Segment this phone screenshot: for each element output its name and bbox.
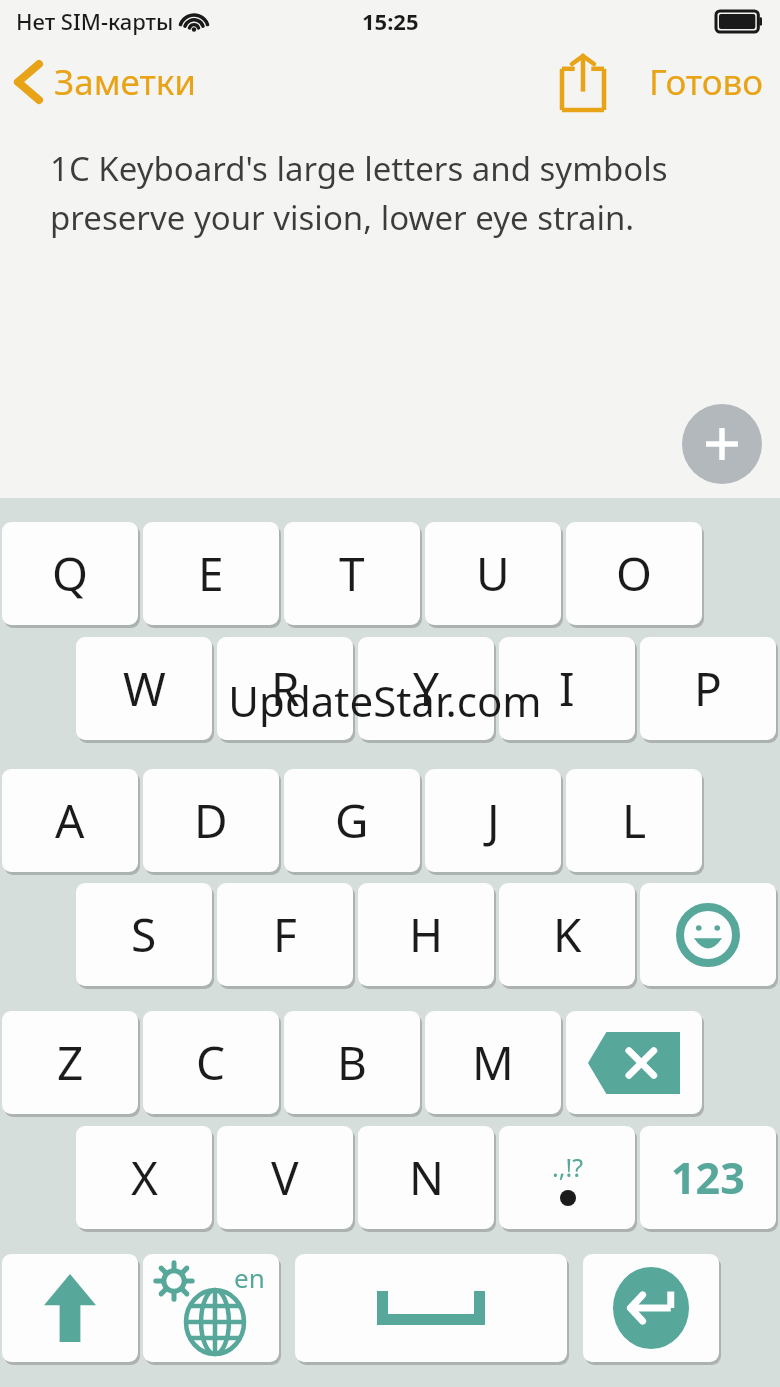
button[interactable]: R	[217, 637, 353, 740]
button[interactable]: L	[566, 769, 702, 872]
button[interactable]: N	[358, 1126, 494, 1229]
staticText: O	[616, 542, 652, 605]
staticText: M	[472, 1031, 514, 1094]
button[interactable]: C	[143, 1011, 279, 1114]
staticText: Z	[57, 1031, 84, 1094]
staticText: I	[559, 657, 575, 720]
button[interactable]: Q	[2, 522, 138, 625]
button[interactable]: Punctuation	[499, 1126, 635, 1229]
button[interactable]: J	[425, 769, 561, 872]
button[interactable]: E	[143, 522, 279, 625]
staticText: UpdateStar.com	[228, 672, 542, 729]
staticText: U	[476, 542, 510, 605]
button[interactable]: Add	[682, 404, 762, 484]
button[interactable]: X	[76, 1126, 212, 1229]
staticText: H	[409, 903, 444, 966]
button[interactable]: B	[284, 1011, 420, 1114]
button[interactable]: M	[425, 1011, 561, 1114]
staticText: 1C Keyboard's large letters and symbols …	[50, 146, 730, 240]
button[interactable]: G	[284, 769, 420, 872]
button[interactable]: S	[76, 883, 212, 986]
staticText: L	[622, 789, 647, 852]
staticText: R	[271, 657, 300, 720]
staticText: en	[234, 1260, 265, 1295]
button[interactable]: O	[566, 522, 702, 625]
staticText: P	[694, 657, 722, 720]
staticText: X	[131, 1146, 158, 1209]
staticText: W	[123, 657, 166, 720]
button[interactable]: Space	[295, 1254, 567, 1362]
button[interactable]: A	[2, 769, 138, 872]
staticText: N	[409, 1146, 444, 1209]
button[interactable]: Z	[2, 1011, 138, 1114]
button[interactable]: Backspace	[566, 1011, 702, 1114]
staticText: T	[339, 542, 365, 605]
button[interactable]: Заметки	[14, 58, 197, 106]
staticText: D	[194, 789, 228, 852]
staticText: S	[131, 903, 157, 966]
button[interactable]: U	[425, 522, 561, 625]
staticText: Y	[413, 657, 440, 720]
button[interactable]: Emoji	[640, 883, 776, 986]
staticText: 15:25	[362, 6, 419, 36]
button[interactable]: T	[284, 522, 420, 625]
button[interactable]: D	[143, 769, 279, 872]
staticText: Нет SIM-карты	[16, 6, 174, 36]
button[interactable]: I	[499, 637, 635, 740]
button[interactable]: K	[499, 883, 635, 986]
button[interactable]: W	[76, 637, 212, 740]
staticText: V	[271, 1146, 299, 1209]
button[interactable]: V	[217, 1126, 353, 1229]
button[interactable]: F	[217, 883, 353, 986]
button[interactable]: Numbers	[640, 1126, 776, 1229]
button[interactable]: Готово	[649, 58, 764, 106]
button[interactable]: Y	[358, 637, 494, 740]
staticText: B	[337, 1031, 367, 1094]
staticText: K	[553, 903, 582, 966]
staticText: F	[273, 903, 297, 966]
staticText: G	[335, 789, 369, 852]
button[interactable]: Switch language and settings	[143, 1254, 279, 1362]
button[interactable]: Share	[548, 46, 618, 118]
staticText: A	[55, 789, 85, 852]
staticText: E	[198, 542, 224, 605]
staticText: J	[487, 789, 500, 852]
button[interactable]: Enter	[583, 1254, 719, 1362]
staticText: 123	[671, 1148, 745, 1207]
staticText: Готово	[649, 58, 764, 106]
staticText: Q	[52, 542, 88, 605]
staticText: .,!?	[552, 1150, 583, 1184]
staticText: C	[196, 1031, 226, 1094]
button[interactable]: H	[358, 883, 494, 986]
button[interactable]: Shift	[2, 1254, 138, 1362]
staticText: Заметки	[54, 58, 197, 106]
button[interactable]: P	[640, 637, 776, 740]
